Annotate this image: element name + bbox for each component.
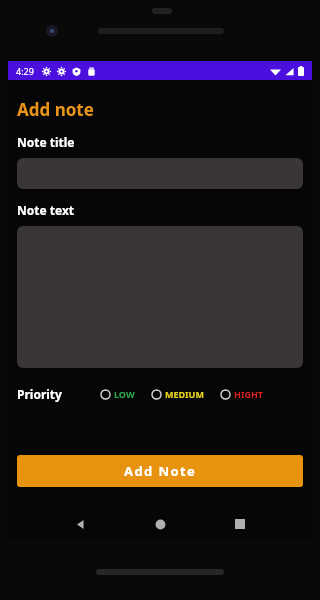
button[interactable]: LOW [100,387,135,401]
staticText: LOW [114,388,135,400]
button[interactable]: HIGHT [220,387,263,401]
button[interactable]: MEDIUM [151,387,204,401]
staticText: Note text [17,202,75,218]
staticText: Add note [17,98,94,121]
button[interactable]: Recent apps [223,507,257,541]
button[interactable]: Back [63,507,97,541]
staticText: HIGHT [234,388,263,400]
staticText: MEDIUM [165,388,204,400]
button[interactable]: Add Note [17,455,303,487]
staticText: Note title [17,134,75,150]
staticText: Priority [17,386,62,402]
staticText: Add Note [124,462,197,480]
button[interactable]: Home [143,507,177,541]
staticText: 4:29 [16,65,34,77]
